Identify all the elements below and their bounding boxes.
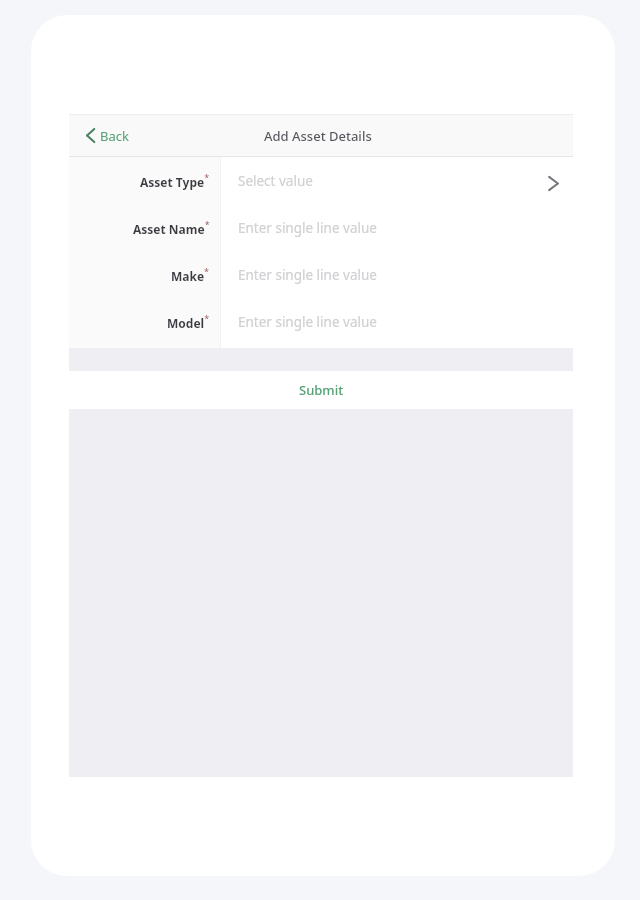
staticText: Enter single line value (238, 266, 377, 284)
button[interactable]: Model* (69, 298, 573, 345)
staticText: Add Asset Details (264, 127, 372, 145)
button[interactable]: Make* (69, 251, 573, 298)
staticText: Make* (171, 265, 210, 284)
other: Back (86, 128, 95, 143)
button[interactable]: Asset Name* (69, 204, 573, 251)
button[interactable]: Submit (69, 371, 573, 409)
staticText: Select value (238, 172, 313, 190)
staticText: Model* (167, 312, 210, 331)
button[interactable]: Back (86, 114, 129, 157)
button[interactable]: Asset Type* (69, 157, 573, 204)
staticText: Submit (299, 381, 344, 399)
other: Select asset type (548, 176, 559, 191)
staticText: Enter single line value (238, 219, 377, 237)
staticText: Back (100, 127, 129, 145)
staticText: Enter single line value (238, 313, 377, 331)
staticText: Asset Name* (133, 218, 210, 237)
staticText: Asset Type* (140, 171, 210, 190)
